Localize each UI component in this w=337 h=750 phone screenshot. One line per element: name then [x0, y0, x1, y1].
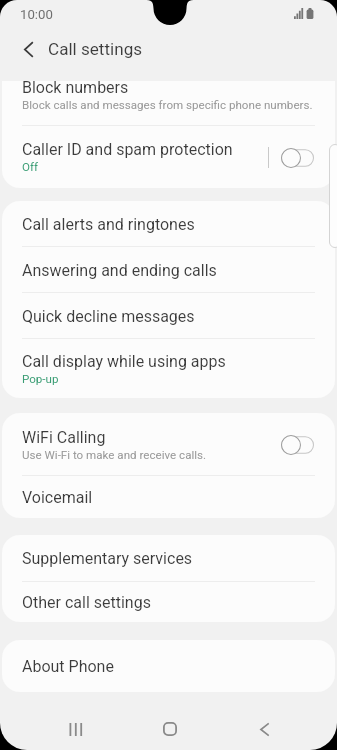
staticText: Other call settings — [22, 593, 151, 612]
staticText: About Phone — [22, 657, 114, 676]
button[interactable]: Other call settings — [2, 582, 335, 622]
button[interactable]: About Phone — [2, 640, 335, 692]
staticText: Block calls and messages from specific p… — [22, 98, 313, 112]
button[interactable]: Back — [242, 709, 287, 749]
staticText: 10:00 — [20, 7, 53, 22]
button[interactable]: Answering and ending calls — [2, 247, 335, 293]
button[interactable]: Voicemail — [2, 476, 335, 518]
button[interactable]: WiFi Calling — [2, 413, 335, 476]
staticText: Pop-up — [22, 372, 59, 386]
staticText: Quick decline messages — [22, 307, 195, 326]
button[interactable]: Call display while using apps — [2, 339, 335, 398]
button[interactable]: Recent apps — [53, 709, 98, 749]
staticText: Use Wi-Fi to make and receive calls. — [22, 448, 207, 462]
staticText: Block numbers — [22, 81, 129, 97]
staticText: Voicemail — [22, 488, 93, 507]
button[interactable]: Toggle off — [281, 435, 314, 455]
staticText: WiFi Calling — [22, 428, 106, 447]
button[interactable]: Navigate up — [12, 33, 44, 65]
staticText: Call alerts and ringtones — [22, 215, 195, 234]
staticText: Call settings — [48, 39, 143, 59]
button[interactable]: Block numbers — [2, 81, 335, 126]
staticText: Off — [22, 160, 39, 174]
button[interactable]: Caller ID and spam protection — [2, 126, 335, 188]
button[interactable]: Home — [147, 709, 192, 749]
button[interactable]: Toggle off — [281, 148, 314, 168]
staticText: Caller ID and spam protection — [22, 140, 233, 159]
staticText: Answering and ending calls — [22, 261, 217, 280]
button[interactable]: Call alerts and ringtones — [2, 201, 335, 247]
staticText: Supplementary services — [22, 549, 193, 568]
button[interactable]: Quick decline messages — [2, 293, 335, 339]
button[interactable]: Supplementary services — [2, 535, 335, 582]
staticText: Call display while using apps — [22, 352, 226, 371]
